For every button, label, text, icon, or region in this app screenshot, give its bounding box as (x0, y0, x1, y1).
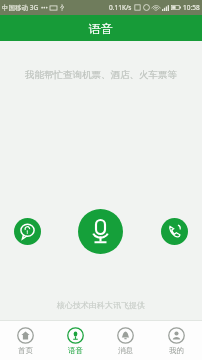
staticText: 语音 (89, 21, 113, 36)
staticText: 核心技术由科大讯飞提供 (0, 300, 202, 310)
button[interactable]: 我的 (151, 321, 202, 360)
staticText: 0.11K/s (109, 3, 132, 12)
button[interactable]: Help (14, 218, 41, 245)
staticText: 10:58 (183, 3, 200, 12)
staticText: ••• (41, 4, 48, 12)
button[interactable]: 首页 (0, 321, 50, 360)
button[interactable]: 消息 (100, 321, 151, 360)
staticText: 语音 (68, 346, 83, 355)
staticText: 消息 (118, 346, 133, 355)
staticText: 我的 (169, 346, 184, 355)
button[interactable]: Speak (78, 209, 123, 254)
staticText: 首页 (18, 346, 33, 355)
staticText: 我能帮忙查询机票、酒店、火车票等 (0, 69, 202, 81)
button[interactable]: 语音 (50, 321, 100, 360)
button[interactable]: Call (161, 218, 188, 245)
staticText: 中国移动 3G (2, 3, 39, 12)
